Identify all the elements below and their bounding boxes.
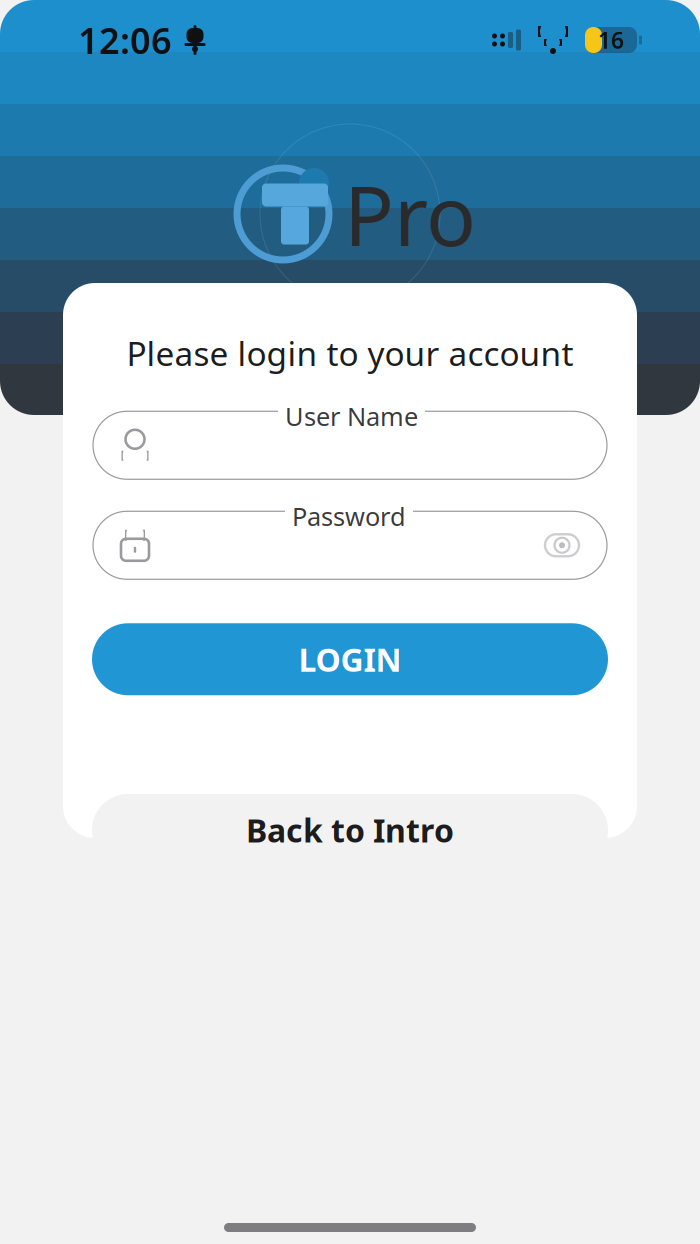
- staticText: 16: [598, 25, 624, 55]
- staticText: Please login to your account: [126, 331, 573, 375]
- staticText: Password: [292, 499, 406, 533]
- button[interactable]: Back to Intro: [92, 794, 608, 866]
- button[interactable]: LOGIN: [92, 623, 608, 695]
- staticText: 12:06: [78, 16, 172, 64]
- staticText: Pro: [344, 159, 476, 269]
- staticText: LOGIN: [298, 638, 401, 680]
- staticText: Back to Intro: [246, 809, 454, 851]
- staticText: User Name: [285, 399, 418, 433]
